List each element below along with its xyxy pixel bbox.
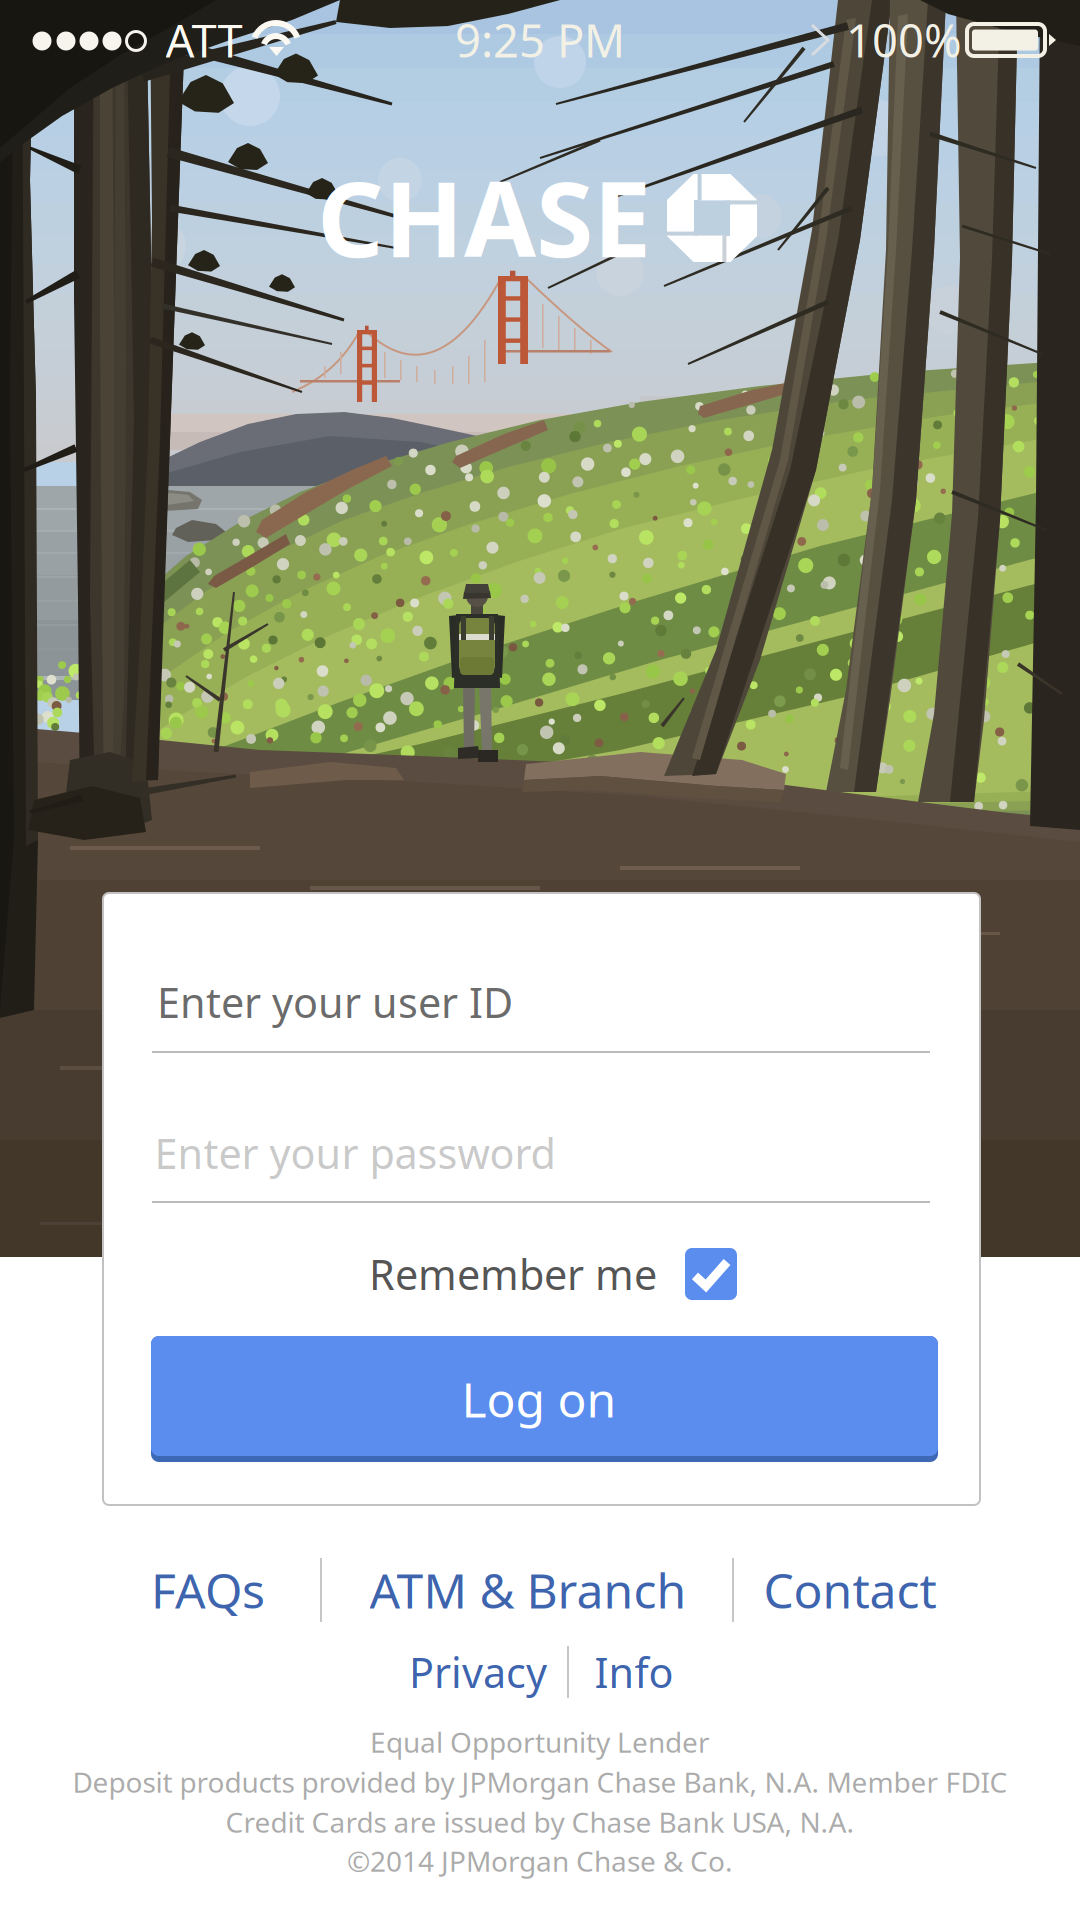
button[interactable]: Contact: [0, 0, 1080, 1920]
staticText: Enter your user ID: [157, 975, 513, 1029]
button[interactable]: Privacy: [0, 0, 1080, 1920]
staticText: Privacy: [409, 1645, 547, 1699]
staticText: FAQs: [151, 1558, 265, 1622]
staticText: ATT: [165, 10, 242, 70]
staticText: ATM & Branch: [369, 1558, 686, 1622]
staticText: Deposit products provided by JPMorgan Ch…: [72, 1763, 1007, 1801]
button[interactable]: Enter your user ID: [0, 0, 1080, 1920]
staticText: Equal Opportunity Lender: [370, 1723, 710, 1761]
staticText: CHASE: [317, 148, 651, 286]
staticText: Contact: [763, 1558, 936, 1622]
staticText: Enter your password: [154, 1126, 555, 1180]
staticText: Remember me: [369, 1247, 657, 1301]
button[interactable]: Enter your password: [0, 0, 1080, 1920]
button[interactable]: ATM & Branch: [0, 0, 1080, 1920]
staticText: Info: [594, 1645, 673, 1699]
button[interactable]: Info: [0, 0, 1080, 1920]
button[interactable]: Log on: [0, 0, 1080, 1920]
staticText: 100%: [846, 10, 962, 70]
button[interactable]: FAQs: [0, 0, 1080, 1920]
staticText: Credit Cards are issued by Chase Bank US…: [225, 1803, 854, 1841]
staticText: 9:25 PM: [455, 10, 625, 70]
staticText: Log on: [461, 1367, 616, 1431]
staticText: ©2014 JPMorgan Chase & Co.: [347, 1842, 733, 1880]
button[interactable]: Remember me: [0, 0, 1080, 1920]
